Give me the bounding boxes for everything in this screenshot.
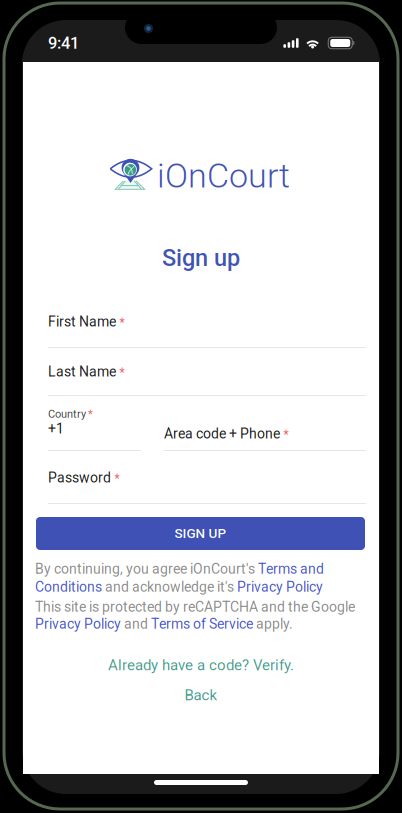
staticText: Terms of Service — [151, 616, 253, 632]
button[interactable]: Last Name — [48, 348, 366, 396]
staticText: Terms and — [258, 561, 324, 577]
staticText: apply. — [253, 616, 293, 632]
staticText: Last Name — [48, 363, 116, 380]
staticText: and — [121, 616, 151, 632]
button[interactable]: First Name — [48, 300, 366, 348]
staticText: This site is protected by reCAPTCHA and … — [35, 599, 355, 615]
staticText: Conditions — [35, 579, 102, 595]
staticText: 9:41 — [48, 33, 79, 53]
staticText: Privacy Policy — [35, 616, 121, 632]
staticText: Already have a code? Verify. — [108, 656, 294, 674]
staticText: * — [119, 315, 124, 329]
staticText: * — [114, 471, 119, 485]
staticText: * — [119, 365, 124, 379]
staticText: Back — [184, 686, 217, 704]
staticText: By continuing, you agree iOnCourt's — [35, 561, 258, 577]
staticText: +1 — [48, 420, 64, 437]
staticText: First Name — [48, 313, 116, 330]
staticText: Sign up — [162, 244, 240, 272]
staticText: Country — [48, 407, 86, 420]
staticText: Privacy Policy — [237, 579, 323, 595]
staticText: and acknowledge it's — [102, 579, 237, 595]
staticText: * — [88, 407, 93, 420]
button[interactable]: Already have a code? Verify. — [23, 655, 379, 675]
button[interactable]: SIGN UP — [36, 517, 365, 550]
staticText: SIGN UP — [174, 526, 226, 541]
button[interactable]: Area code + Phone — [164, 396, 366, 451]
staticText: * — [283, 427, 288, 441]
staticText: iOnCourt — [157, 156, 290, 196]
button[interactable]: Country — [48, 396, 141, 451]
button[interactable]: Back — [23, 685, 379, 705]
staticText: Area code + Phone — [164, 425, 280, 442]
staticText: Password — [48, 469, 111, 486]
button[interactable]: Password — [48, 451, 366, 504]
